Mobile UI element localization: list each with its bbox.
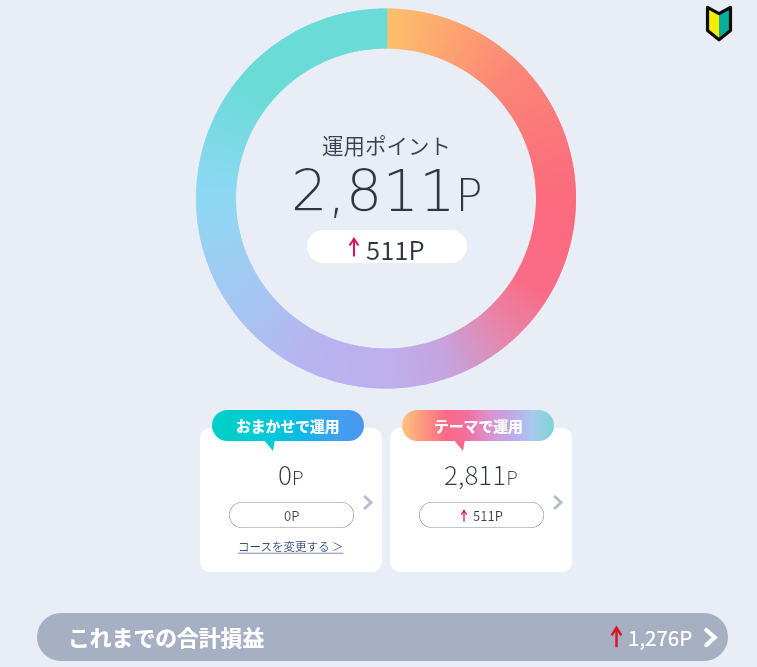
staticText: 511P <box>366 230 425 263</box>
button[interactable]: コースを変更する ＞ <box>238 538 344 555</box>
other: Open <box>364 496 372 509</box>
button[interactable]: 511P <box>419 502 544 528</box>
staticText: おまかせで運用 <box>236 415 340 436</box>
staticText: 511P <box>473 506 503 525</box>
staticText: これまでの合計損益 <box>68 621 265 653</box>
staticText: テーマで運用 <box>434 415 523 436</box>
staticText: 1,276P <box>628 622 693 652</box>
other: Beginner mark <box>705 1 733 41</box>
button[interactable]: 0P <box>229 502 354 528</box>
staticText: 運用ポイント <box>322 129 452 160</box>
button[interactable]: 511P <box>307 230 467 263</box>
button[interactable] <box>390 428 572 572</box>
other: Open <box>554 496 562 509</box>
staticText: 2,811P <box>291 158 483 225</box>
staticText: 0P <box>284 506 300 525</box>
button[interactable]: これまでの合計損益 <box>37 613 728 661</box>
staticText: 2,811P <box>444 455 518 493</box>
staticText: 0P <box>278 455 304 493</box>
button[interactable] <box>200 428 382 572</box>
